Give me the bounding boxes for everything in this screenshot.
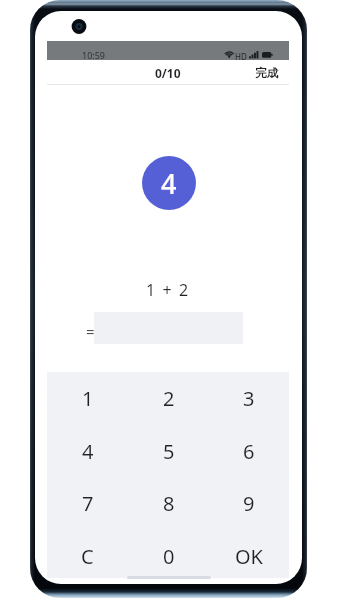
staticText: 0/10 [155, 65, 181, 81]
button[interactable]: 9 [208, 477, 289, 529]
staticText: OK [235, 543, 263, 570]
button[interactable]: 5 [128, 425, 209, 477]
staticText: 0 [163, 543, 175, 570]
button[interactable]: C [47, 530, 128, 582]
staticText: HD [235, 51, 247, 62]
staticText: 2 [163, 385, 175, 412]
button[interactable]: 完成 [247, 62, 286, 84]
staticText: 7 [82, 490, 94, 517]
staticText: 10:59 [82, 49, 106, 61]
button[interactable]: OK [208, 530, 289, 582]
staticText: 9 [243, 490, 255, 517]
button[interactable]: 4 [142, 156, 196, 210]
button[interactable]: 0 [128, 530, 209, 582]
staticText: 6 [243, 438, 255, 465]
staticText: 5 [163, 438, 175, 465]
button[interactable]: 6 [208, 425, 289, 477]
button[interactable]: 1 [47, 372, 128, 424]
button[interactable]: 3 [208, 372, 289, 424]
staticText: 4 [161, 165, 177, 202]
button[interactable]: 8 [128, 477, 209, 529]
staticText: 8 [163, 490, 175, 517]
button[interactable]: 2 [128, 372, 209, 424]
staticText: 4 [82, 438, 94, 465]
staticText: 1 [82, 385, 94, 412]
staticText: 3 [243, 385, 255, 412]
button[interactable]: 7 [47, 477, 128, 529]
button[interactable]: 4 [47, 425, 128, 477]
staticText: C [81, 543, 94, 570]
staticText: = [86, 321, 95, 341]
staticText: 完成 [255, 66, 278, 80]
staticText: 1 + 2 [146, 279, 190, 301]
